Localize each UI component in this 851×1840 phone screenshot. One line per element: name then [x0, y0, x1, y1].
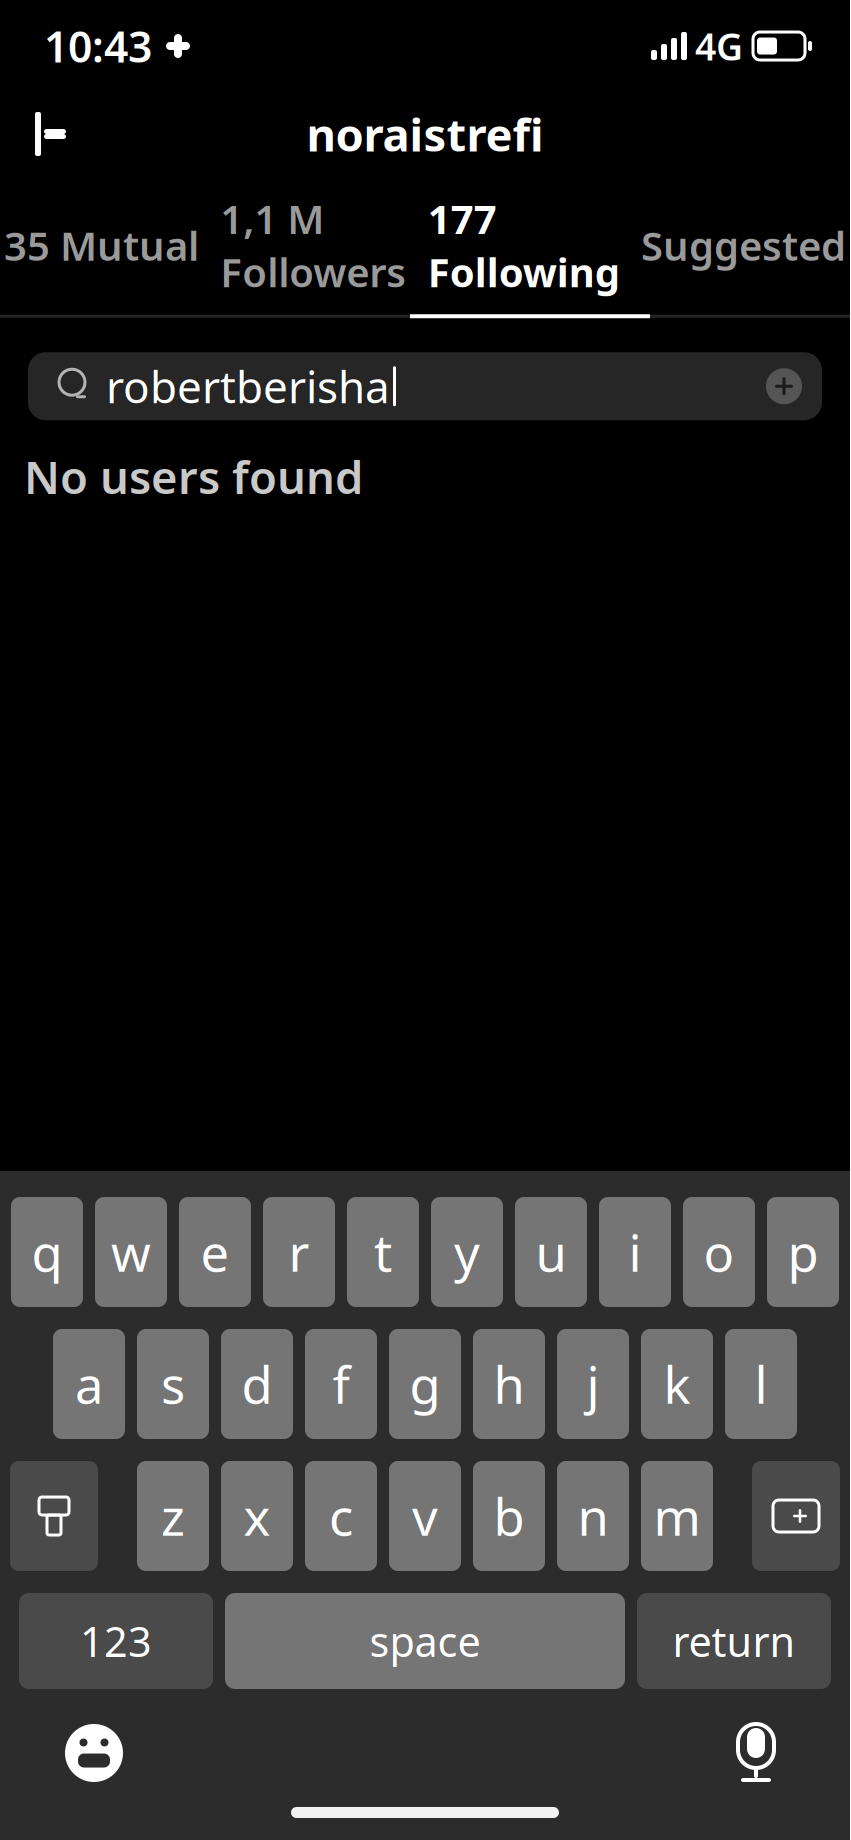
button[interactable]: s	[137, 1329, 209, 1439]
staticText: k	[663, 1350, 690, 1418]
button[interactable]: n	[557, 1461, 629, 1571]
button[interactable]: l	[725, 1329, 797, 1439]
staticText: 123	[80, 1614, 152, 1668]
staticText: d	[241, 1350, 272, 1418]
staticText: 35 Mutual	[4, 219, 199, 272]
staticText: p	[787, 1218, 818, 1286]
button[interactable]: t	[347, 1197, 419, 1307]
staticText: l	[754, 1350, 767, 1418]
staticText: 1,1 M Followers	[220, 192, 406, 298]
staticText: a	[75, 1350, 103, 1418]
staticText: o	[703, 1218, 734, 1286]
button[interactable]: q	[11, 1197, 83, 1307]
button[interactable]: u	[515, 1197, 587, 1307]
button[interactable]: Suggested	[641, 203, 846, 288]
button[interactable]: 123	[19, 1593, 213, 1689]
staticText: q	[31, 1218, 62, 1286]
button[interactable]: Shift	[10, 1461, 98, 1571]
staticText: u	[535, 1218, 566, 1286]
button[interactable]: m	[641, 1461, 713, 1571]
button[interactable]: Clear search text	[752, 354, 816, 418]
button[interactable]: Dictation	[716, 1713, 796, 1793]
button[interactable]: p	[767, 1197, 839, 1307]
button[interactable]: i	[599, 1197, 671, 1307]
button[interactable]: b	[473, 1461, 545, 1571]
staticText: 10:43	[44, 18, 152, 74]
staticText: noraistrefi	[306, 104, 543, 164]
staticText: v	[412, 1482, 438, 1550]
button[interactable]: 177 Following	[428, 176, 620, 314]
staticText: 177 Following	[428, 192, 620, 298]
staticText: e	[200, 1218, 229, 1286]
button[interactable]: a	[53, 1329, 125, 1439]
button[interactable]: 35 Mutual	[4, 203, 199, 288]
button[interactable]: x	[221, 1461, 293, 1571]
staticText: j	[586, 1350, 599, 1418]
staticText: r	[288, 1218, 309, 1286]
button[interactable]: Back	[12, 95, 90, 173]
staticText: h	[493, 1350, 524, 1418]
staticText: s	[161, 1350, 185, 1418]
staticText: w	[111, 1218, 151, 1286]
button[interactable]: e	[179, 1197, 251, 1307]
staticText: robertberisha	[106, 357, 390, 415]
staticText: return	[672, 1614, 795, 1668]
staticText: f	[332, 1350, 349, 1418]
button[interactable]: y	[431, 1197, 503, 1307]
staticText: i	[628, 1218, 641, 1286]
button[interactable]: space	[225, 1593, 625, 1689]
staticText: 4G	[695, 21, 743, 71]
button[interactable]: k	[641, 1329, 713, 1439]
staticText: No users found	[24, 446, 363, 506]
button[interactable]: z	[137, 1461, 209, 1571]
staticText: Suggested	[641, 219, 846, 272]
button[interactable]: c	[305, 1461, 377, 1571]
button[interactable]: o	[683, 1197, 755, 1307]
button[interactable]: 1,1 M Followers	[220, 176, 406, 314]
staticText: x	[243, 1482, 270, 1550]
staticText: m	[653, 1482, 700, 1550]
staticText: g	[409, 1350, 440, 1418]
staticText: t	[374, 1218, 392, 1286]
staticText: space	[369, 1614, 480, 1668]
button[interactable]: return	[637, 1593, 831, 1689]
button[interactable]: v	[389, 1461, 461, 1571]
staticText: c	[329, 1482, 353, 1550]
staticText: b	[493, 1482, 524, 1550]
button[interactable]: w	[95, 1197, 167, 1307]
button[interactable]: j	[557, 1329, 629, 1439]
button[interactable]: d	[221, 1329, 293, 1439]
button[interactable]: r	[263, 1197, 335, 1307]
button[interactable]: f	[305, 1329, 377, 1439]
button[interactable]: Emoji keyboard	[54, 1713, 134, 1793]
staticText: n	[577, 1482, 608, 1550]
button[interactable]: Delete	[752, 1461, 840, 1571]
staticText: z	[161, 1482, 185, 1550]
staticText: y	[454, 1218, 480, 1286]
button[interactable]: g	[389, 1329, 461, 1439]
button[interactable]: h	[473, 1329, 545, 1439]
